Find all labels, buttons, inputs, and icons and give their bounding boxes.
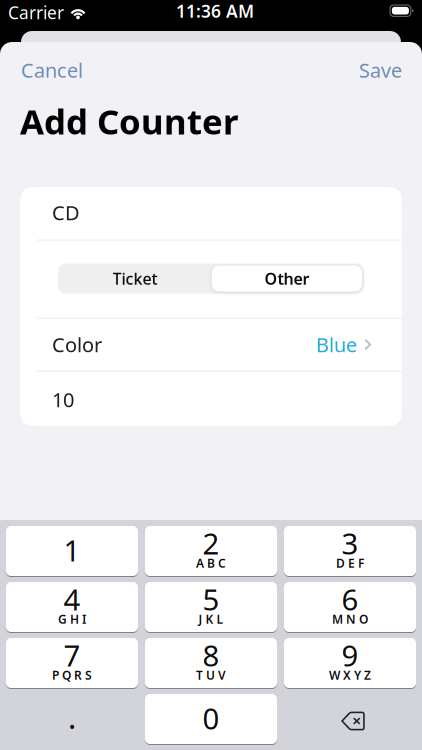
staticText: .	[68, 697, 76, 737]
staticText: 8	[202, 635, 219, 674]
staticText: 0	[202, 698, 219, 737]
staticText: W X Y Z	[329, 667, 371, 683]
staticText: P Q R S	[52, 667, 92, 683]
button[interactable]: 3	[284, 526, 416, 576]
button[interactable]: Save	[340, 48, 422, 92]
button[interactable]: Delete	[284, 694, 416, 744]
staticText: 11:36 AM	[176, 0, 254, 22]
staticText: CD	[52, 199, 80, 226]
staticText: 7	[63, 635, 80, 674]
button[interactable]: .	[6, 694, 138, 744]
staticText: 9	[341, 635, 358, 674]
staticText: T U V	[196, 667, 226, 683]
button[interactable]: 0	[145, 694, 277, 744]
button[interactable]: Ticket	[58, 263, 212, 293]
staticText: 5	[202, 579, 219, 618]
button[interactable]: 1	[6, 526, 138, 576]
staticText: Add Counter	[20, 98, 238, 144]
staticText: 4	[63, 579, 80, 618]
button[interactable]: 7	[6, 638, 138, 688]
staticText: G H I	[58, 611, 86, 627]
staticText: Color	[52, 331, 102, 358]
button[interactable]: 6	[284, 582, 416, 632]
staticText: 1	[63, 530, 80, 569]
staticText: A B C	[196, 555, 226, 571]
button[interactable]: 9	[284, 638, 416, 688]
staticText: Other	[264, 268, 309, 289]
staticText: Ticket	[112, 268, 157, 289]
staticText: D E F	[336, 555, 364, 571]
staticText: Blue	[316, 331, 357, 358]
staticText: Save	[359, 57, 402, 83]
staticText: 3	[341, 523, 358, 562]
staticText: M N O	[332, 611, 368, 627]
button[interactable]: Color	[20, 318, 402, 370]
staticText: 6	[341, 579, 358, 618]
staticText: 10	[52, 386, 74, 413]
staticText: Cancel	[21, 57, 83, 83]
button[interactable]: 8	[145, 638, 277, 688]
button[interactable]: 2	[145, 526, 277, 576]
button[interactable]: 5	[145, 582, 277, 632]
staticText: Carrier	[8, 1, 64, 24]
button[interactable]: Cancel	[0, 48, 103, 92]
staticText: 2	[202, 523, 219, 562]
button[interactable]: 4	[6, 582, 138, 632]
button[interactable]: Other	[210, 263, 364, 293]
staticText: J K L	[198, 611, 223, 627]
